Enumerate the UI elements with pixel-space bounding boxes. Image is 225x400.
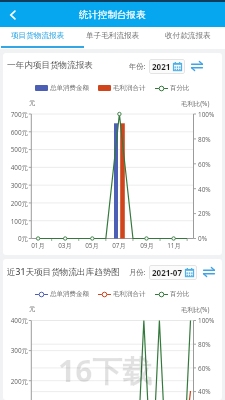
button[interactable]: 百分比 [155,290,190,298]
button[interactable]: 总单消费金额 [35,290,89,298]
button[interactable]: 毛利润合计 [98,290,146,298]
staticText: 一年内项目货物流报表 [7,60,93,71]
staticText: 400元 [3,316,28,325]
staticText: 80% [198,135,211,144]
staticText: 40% [198,387,211,396]
staticText: 09月 [137,241,157,250]
button[interactable]: 毛利润合计 [98,84,146,92]
staticText: 200元 [3,199,28,208]
staticText: 百分比 [170,84,190,92]
staticText: 60% [198,364,211,373]
staticText: 近31天项目货物流出库趋势图 [7,266,120,278]
staticText: 百分比 [170,290,190,298]
button[interactable]: 项目货物流报表 [0,27,75,49]
staticText: 毛利润合计 [113,84,146,92]
staticText: 2021 [152,61,171,72]
staticText: 300元 [3,181,28,190]
staticText: 单子毛利流报表 [86,31,140,41]
staticText: 总单消费金额 [50,84,89,92]
staticText: 01月 [28,241,48,250]
button[interactable]: 2021 [152,59,182,74]
staticText: 100元 [3,217,28,226]
staticText: 总单消费金额 [50,290,89,298]
staticText: 20% [198,209,211,218]
staticText: 毛利比(%) [181,99,210,108]
staticText: 0% [198,234,207,243]
staticText: 月份: [129,267,146,277]
staticText: 0元 [3,234,28,243]
staticText: 统计控制台报表 [79,9,146,21]
staticText: 500元 [3,145,28,154]
staticText: 元 [29,305,36,313]
button[interactable]: 2021-07 [152,265,194,280]
staticText: 400元 [3,163,28,172]
staticText: 100% [198,316,215,325]
staticText: 11月 [164,241,184,250]
staticText: 60% [198,160,211,169]
staticText: 80% [198,340,211,349]
button[interactable]: Switch chart type [202,265,216,279]
button[interactable]: 百分比 [155,84,190,92]
staticText: 700元 [3,110,28,119]
staticText: 300元 [3,346,28,355]
staticText: 年份: [129,61,146,71]
button[interactable]: Switch chart type [190,59,204,73]
staticText: 100% [198,110,215,119]
staticText: 03月 [55,241,75,250]
staticText: 07月 [109,241,129,250]
staticText: 600元 [3,128,28,137]
staticText: 毛利比(%) [181,305,210,314]
button[interactable]: 单子毛利流报表 [75,27,150,49]
staticText: 元 [29,99,36,107]
staticText: 16下载 [58,350,153,391]
staticText: 收付款流报表 [165,31,211,41]
staticText: 40% [198,185,211,194]
staticText: 项目货物流报表 [11,31,65,41]
button[interactable]: 总单消费金额 [35,84,89,92]
staticText: 毛利润合计 [113,290,146,298]
staticText: 05月 [82,241,102,250]
button[interactable]: 收付款流报表 [150,27,225,49]
staticText: 2021-07 [152,267,183,278]
staticText: 200元 [3,377,28,386]
button[interactable]: Back [2,4,24,26]
